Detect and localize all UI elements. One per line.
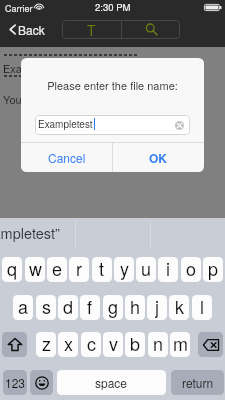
staticText: T <box>87 20 96 39</box>
staticText: b <box>130 332 141 355</box>
button[interactable]: i <box>158 257 178 282</box>
staticText: a <box>18 295 29 318</box>
staticText: k <box>175 295 184 318</box>
button[interactable]: Cancel <box>21 143 112 172</box>
staticText: c <box>87 332 96 355</box>
button[interactable]: n <box>148 332 168 357</box>
staticText: Exampletest <box>38 117 93 131</box>
button[interactable]: j <box>147 295 167 320</box>
staticText: e <box>52 257 63 280</box>
staticText: 2:30 PM <box>95 0 131 14</box>
staticText: z <box>42 332 51 355</box>
button[interactable]: u <box>136 257 156 282</box>
staticText: g <box>108 295 119 318</box>
staticText: p <box>208 257 219 280</box>
button[interactable]: a <box>13 295 33 320</box>
button[interactable]: Clear text <box>175 121 184 130</box>
button[interactable]: b <box>125 332 145 357</box>
button[interactable]: c <box>81 332 101 357</box>
staticText: x <box>64 332 73 355</box>
button[interactable]: f <box>80 295 100 320</box>
staticText: 123 <box>5 374 26 391</box>
button[interactable]: Back <box>9 21 45 37</box>
staticText: i <box>166 257 170 280</box>
staticText: You <box>3 91 22 107</box>
button[interactable]: OK <box>113 143 204 172</box>
button[interactable]: return <box>171 370 224 395</box>
staticText: y <box>120 257 129 280</box>
button[interactable]: space <box>57 370 166 395</box>
button[interactable]: z <box>36 332 56 357</box>
staticText: v <box>109 332 118 355</box>
staticText: j <box>155 295 159 318</box>
staticText: f <box>87 295 93 318</box>
staticText: Cancel <box>48 149 86 166</box>
button[interactable]: p <box>203 257 223 282</box>
button[interactable]: Text tool <box>62 20 121 39</box>
staticText: Carrier <box>5 2 33 15</box>
staticText: Please enter the file name: <box>21 77 204 93</box>
staticText: r <box>76 257 82 280</box>
staticText: h <box>130 295 141 318</box>
button[interactable]: v <box>103 332 123 357</box>
button[interactable]: m <box>170 332 190 357</box>
staticText: m <box>173 332 188 355</box>
button[interactable]: h <box>125 295 145 320</box>
button[interactable]: Shift <box>2 332 27 357</box>
button[interactable]: l <box>192 295 212 320</box>
staticText: t <box>99 257 105 280</box>
button[interactable]: x <box>58 332 78 357</box>
staticText: o <box>186 257 197 280</box>
staticText: “Exampletest” <box>0 222 81 243</box>
staticText: return <box>182 374 214 391</box>
button[interactable]: Search <box>122 20 180 39</box>
button[interactable]: q <box>2 257 22 282</box>
button[interactable]: Backspace <box>198 332 223 357</box>
button[interactable]: t <box>92 257 112 282</box>
button[interactable]: s <box>36 295 56 320</box>
staticText: d <box>63 295 74 318</box>
staticText: s <box>42 295 51 318</box>
button[interactable]: 123 <box>3 370 27 395</box>
staticText: space <box>95 374 128 391</box>
staticText: Exampletest <box>3 60 64 76</box>
staticText: l <box>200 295 204 318</box>
button[interactable]: “Exampletest” <box>0 218 75 248</box>
button[interactable]: w <box>25 257 45 282</box>
staticText: OK <box>149 149 168 166</box>
staticText: Back <box>18 21 45 37</box>
button[interactable]: Emoji <box>30 370 53 395</box>
button[interactable]: d <box>58 295 78 320</box>
staticText: w <box>29 257 42 280</box>
button[interactable]: o <box>181 257 201 282</box>
button[interactable]: y <box>114 257 134 282</box>
button[interactable]: r <box>69 257 89 282</box>
staticText: u <box>141 257 152 280</box>
button[interactable]: k <box>169 295 189 320</box>
staticText: q <box>7 257 18 280</box>
button[interactable]: g <box>103 295 123 320</box>
staticText: n <box>153 332 164 355</box>
button[interactable]: e <box>47 257 67 282</box>
